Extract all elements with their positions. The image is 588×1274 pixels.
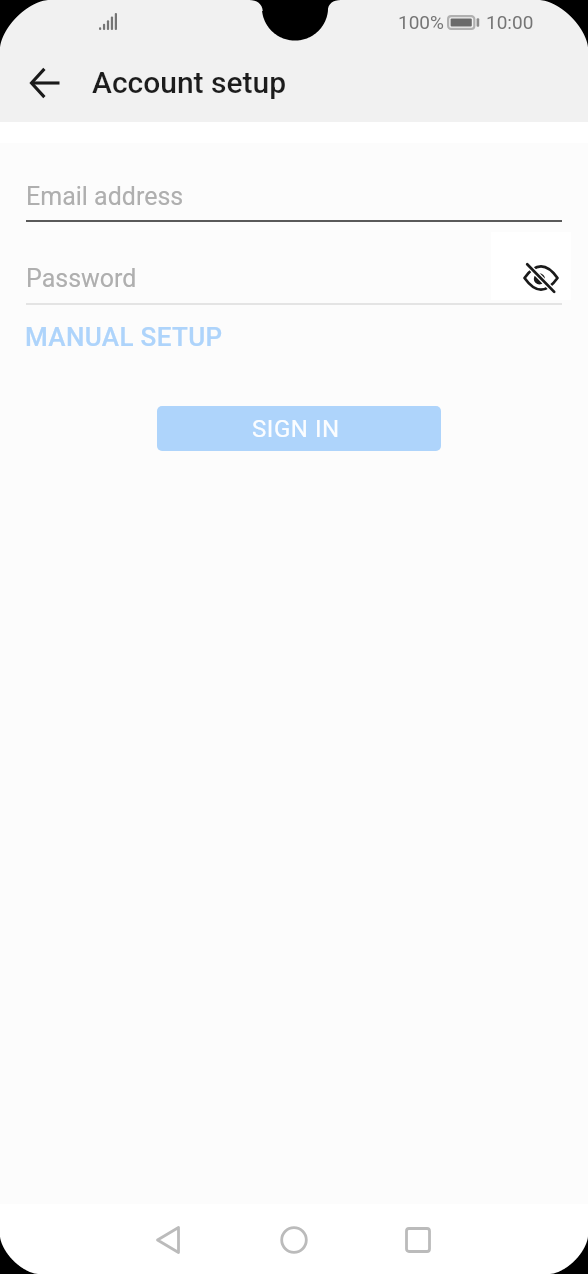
button[interactable]: SIGN IN bbox=[157, 406, 441, 451]
staticText: Password bbox=[26, 264, 137, 293]
button[interactable]: MANUAL SETUP bbox=[25, 318, 223, 356]
staticText: 100% bbox=[398, 11, 444, 33]
button[interactable]: Home bbox=[264, 1210, 324, 1270]
button[interactable]: Password bbox=[26, 258, 562, 298]
button[interactable]: Recents bbox=[388, 1210, 448, 1270]
staticText: Email address bbox=[26, 182, 184, 211]
button[interactable]: Back bbox=[21, 59, 69, 107]
staticText: 10:00 bbox=[486, 11, 534, 33]
staticText: MANUAL SETUP bbox=[25, 322, 223, 352]
button[interactable]: Email address bbox=[26, 176, 562, 216]
staticText: SIGN IN bbox=[252, 415, 340, 443]
staticText: Account setup bbox=[92, 65, 287, 100]
button[interactable]: Back bbox=[138, 1210, 198, 1270]
button[interactable]: Show password bbox=[516, 253, 565, 302]
